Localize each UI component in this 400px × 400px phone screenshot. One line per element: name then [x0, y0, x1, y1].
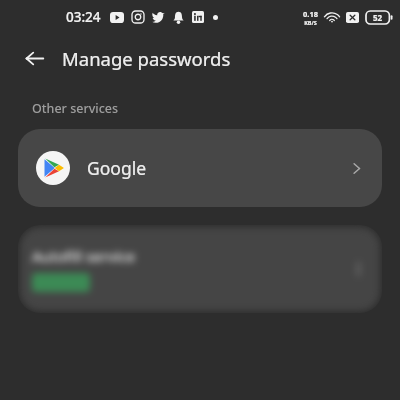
staticText: KB/S — [304, 19, 317, 26]
staticText: 03:24 — [66, 8, 101, 26]
staticText: Enabled — [40, 275, 82, 290]
button[interactable]: Back — [14, 38, 54, 78]
button[interactable]: Autofill service — [18, 225, 382, 313]
staticText: Other services — [32, 100, 119, 117]
button[interactable]: Google — [18, 129, 382, 207]
staticText: 52 — [373, 12, 383, 23]
staticText: Google — [87, 156, 147, 180]
staticText: 0.18 — [303, 9, 318, 19]
staticText: Manage passwords — [62, 46, 231, 71]
staticText: Autofill service — [32, 246, 136, 266]
